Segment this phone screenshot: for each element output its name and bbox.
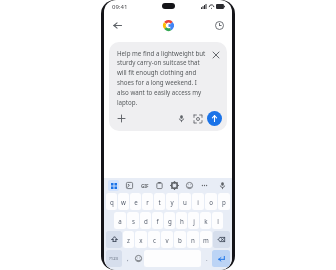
staticText: l xyxy=(217,217,219,225)
button[interactable]: Emoji xyxy=(133,250,143,267)
button[interactable]: p xyxy=(218,193,230,210)
staticText: . xyxy=(206,255,208,263)
staticText: y xyxy=(170,198,174,206)
staticText: z xyxy=(127,236,130,244)
button[interactable]: a xyxy=(114,212,126,229)
button[interactable]: x xyxy=(135,231,147,248)
staticText: t xyxy=(158,198,161,206)
staticText: GIF xyxy=(141,183,149,189)
staticText: m xyxy=(203,236,209,244)
button[interactable]: y xyxy=(166,193,178,210)
staticText: 09:41 xyxy=(112,3,128,11)
button[interactable]: u xyxy=(179,193,191,210)
staticText: h xyxy=(180,217,184,225)
staticText: Help me find a lightweight but sturdy ca… xyxy=(117,49,210,107)
staticText: n xyxy=(191,236,195,244)
staticText: k xyxy=(204,217,208,225)
button[interactable]: g xyxy=(164,212,175,229)
button[interactable]: Voice typing xyxy=(217,180,228,191)
staticText: d xyxy=(144,217,148,225)
button[interactable]: GIF xyxy=(140,183,150,189)
button[interactable]: ?123 xyxy=(106,250,122,267)
button[interactable]: Stickers xyxy=(124,180,135,191)
staticText: b xyxy=(178,236,182,244)
button[interactable]: Backspace xyxy=(213,231,230,248)
button[interactable]: More options xyxy=(199,180,210,191)
button[interactable]: b xyxy=(174,231,186,248)
staticText: j xyxy=(193,217,195,225)
button[interactable]: o xyxy=(205,193,217,210)
button[interactable]: s xyxy=(127,212,139,229)
staticText: c xyxy=(153,236,156,244)
staticText: i xyxy=(197,198,199,206)
button[interactable]: v xyxy=(161,231,173,248)
staticText: v xyxy=(165,236,169,244)
button[interactable]: History xyxy=(211,17,227,33)
button[interactable]: Close xyxy=(210,49,222,61)
button[interactable]: m xyxy=(200,231,212,248)
button[interactable]: Back xyxy=(109,17,125,33)
button[interactable]: Enter xyxy=(212,250,230,267)
button[interactable]: h xyxy=(176,212,187,229)
button[interactable]: c xyxy=(148,231,160,248)
button[interactable]: z xyxy=(123,231,134,248)
button[interactable]: Comma xyxy=(123,250,132,267)
button[interactable]: Add xyxy=(115,112,128,125)
button[interactable]: Send xyxy=(207,111,222,126)
button[interactable]: Google Lens xyxy=(191,112,204,125)
button[interactable]: Keyboard modes xyxy=(108,180,119,191)
button[interactable]: Emoji xyxy=(184,180,195,191)
staticText: g xyxy=(168,217,172,225)
button[interactable]: t xyxy=(154,193,165,210)
button[interactable]: f xyxy=(152,212,163,229)
staticText: r xyxy=(146,198,149,206)
button[interactable]: Clipboard xyxy=(154,180,165,191)
button[interactable]: e xyxy=(130,193,141,210)
button[interactable]: Help me find a lightweight but sturdy ca… xyxy=(109,42,227,131)
staticText: s xyxy=(132,217,135,225)
button[interactable]: r xyxy=(142,193,153,210)
button[interactable]: Shift xyxy=(106,231,122,248)
staticText: o xyxy=(209,198,213,206)
staticText: a xyxy=(118,217,122,225)
button[interactable]: k xyxy=(200,212,211,229)
button[interactable]: i xyxy=(192,193,204,210)
button[interactable]: Google xyxy=(159,16,177,34)
button[interactable]: w xyxy=(118,193,129,210)
staticText: q xyxy=(110,198,114,206)
button[interactable]: Voice input xyxy=(175,112,188,125)
staticText: x xyxy=(139,236,143,244)
staticText: f xyxy=(156,217,159,225)
button[interactable]: Settings xyxy=(169,180,180,191)
button[interactable]: d xyxy=(140,212,151,229)
staticText: p xyxy=(222,198,226,206)
button[interactable]: j xyxy=(188,212,199,229)
staticText: e xyxy=(134,198,138,206)
staticText: ?123 xyxy=(109,256,119,262)
staticText: u xyxy=(183,198,187,206)
button[interactable]: Period xyxy=(202,250,211,267)
staticText: , xyxy=(127,255,129,263)
button[interactable]: n xyxy=(187,231,199,248)
button[interactable]: l xyxy=(212,212,223,229)
button[interactable]: q xyxy=(106,193,117,210)
staticText: w xyxy=(121,198,126,206)
